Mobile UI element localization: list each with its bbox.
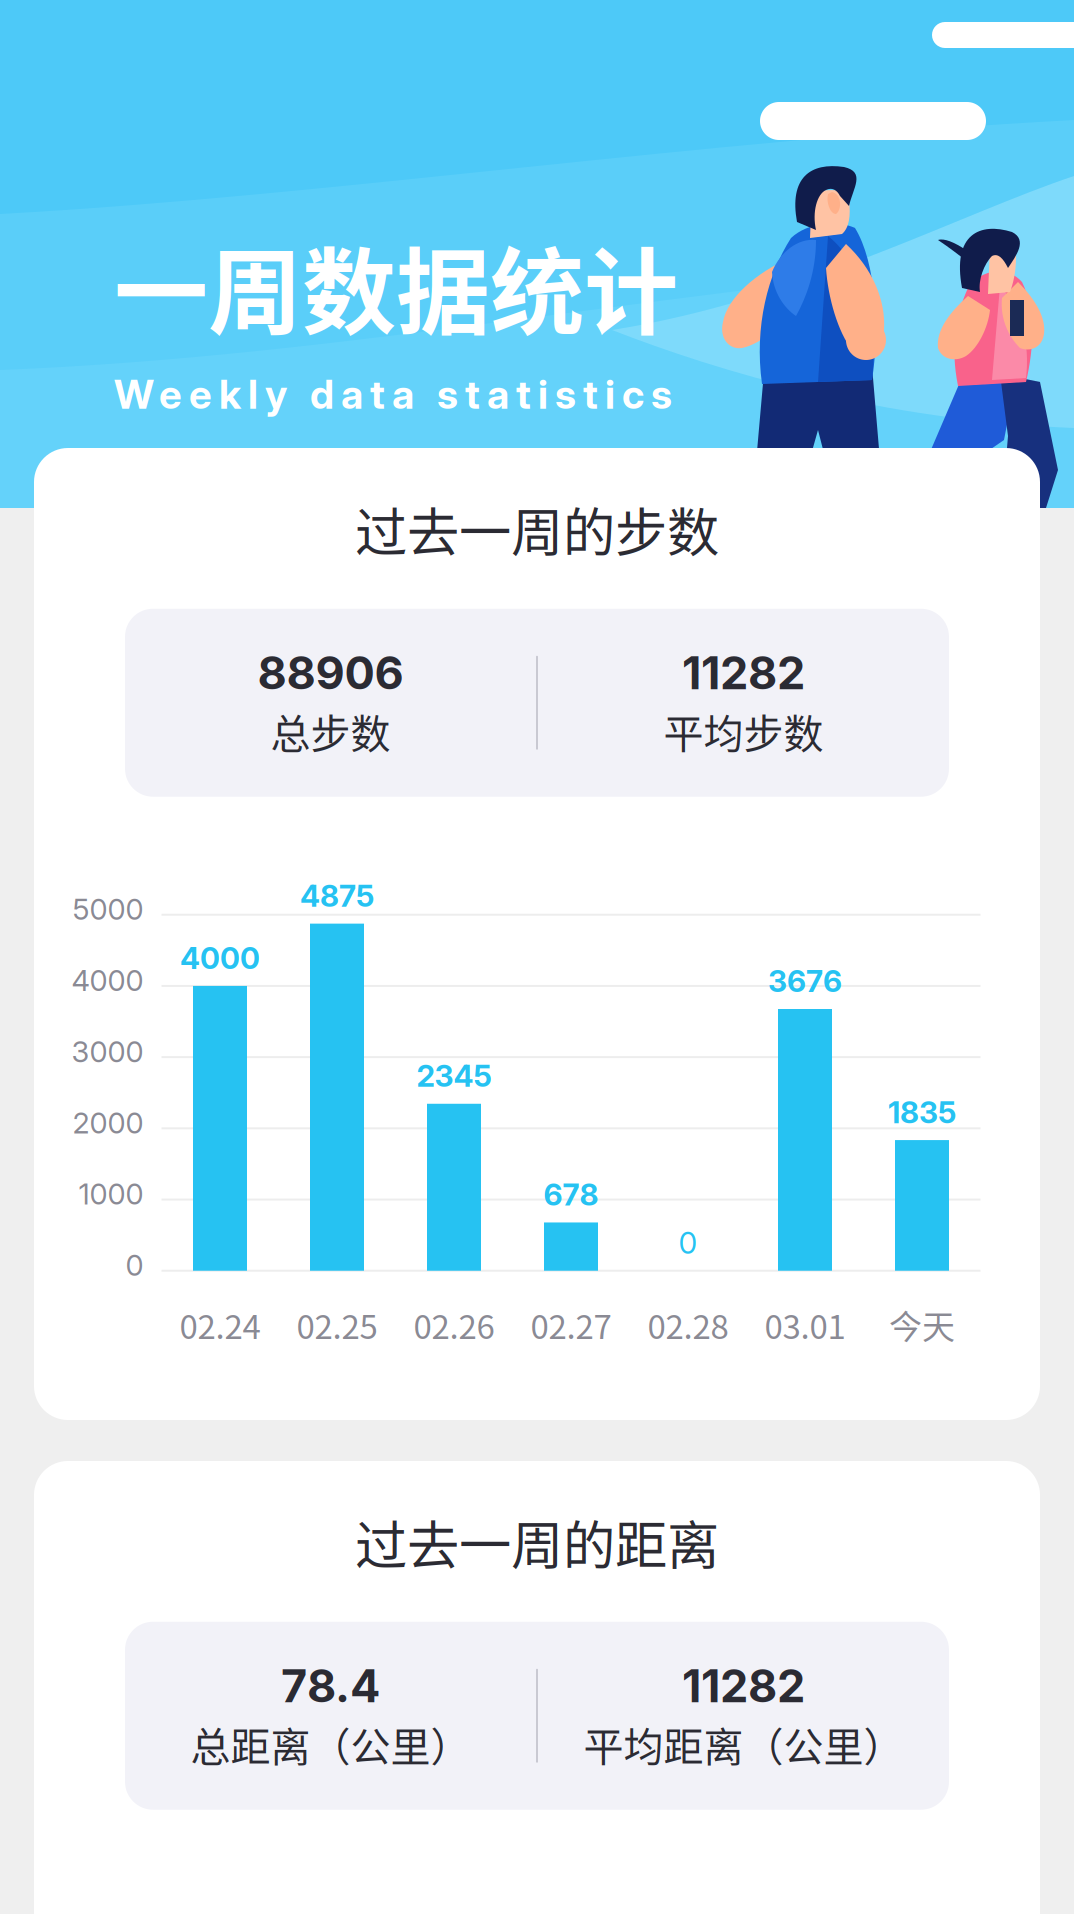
staticText: 0 <box>678 1225 697 1261</box>
staticText: 88906 <box>257 645 403 700</box>
staticText: 2000 <box>72 1105 143 1140</box>
staticText: 3676 <box>768 963 842 999</box>
staticText: 总距离（公里） <box>190 1715 470 1773</box>
staticText: 02.27 <box>530 1301 611 1348</box>
staticText: 02.26 <box>413 1301 494 1348</box>
staticText: 一周数据统计 <box>114 218 678 354</box>
staticText: 678 <box>543 1176 598 1213</box>
staticText: 11282 <box>682 645 805 700</box>
staticText: 总步数 <box>270 702 390 760</box>
staticText: 78.4 <box>281 1658 380 1713</box>
staticText: 1835 <box>888 1094 956 1130</box>
staticText: 4000 <box>180 940 260 976</box>
staticText: 今天 <box>889 1301 955 1348</box>
staticText: Weekly data statistics <box>114 370 672 418</box>
staticText: 02.28 <box>647 1301 728 1348</box>
staticText: 4875 <box>300 878 374 914</box>
staticText: 02.24 <box>179 1301 260 1348</box>
staticText: 2345 <box>416 1058 491 1094</box>
staticText: 3000 <box>71 1034 143 1069</box>
staticText: 11282 <box>682 1658 805 1713</box>
staticText: 1000 <box>78 1176 143 1212</box>
staticText: 0 <box>125 1248 143 1283</box>
staticText: 4000 <box>71 963 143 998</box>
staticText: 5000 <box>72 892 143 927</box>
staticText: 03.01 <box>764 1301 845 1348</box>
staticText: 过去一周的步数 <box>355 491 719 567</box>
button[interactable]: 过去一周的步数 <box>34 448 1040 1420</box>
staticText: 02.25 <box>296 1301 377 1348</box>
button[interactable]: 过去一周的距离 <box>34 1461 1040 1914</box>
staticText: 平均距离（公里） <box>583 1715 903 1773</box>
staticText: 平均步数 <box>663 702 823 760</box>
staticText: 过去一周的距离 <box>355 1504 719 1580</box>
